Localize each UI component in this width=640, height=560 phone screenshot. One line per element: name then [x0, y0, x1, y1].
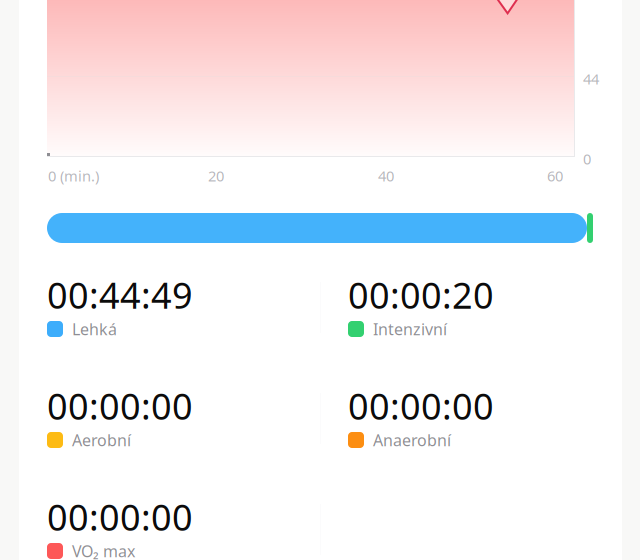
- staticText: 00:44:49: [47, 271, 193, 319]
- staticText: 00:00:00: [47, 382, 193, 430]
- staticText: 20: [208, 166, 224, 185]
- button[interactable]: 00:00:20: [348, 271, 640, 341]
- staticText: VO₂ max: [72, 540, 135, 560]
- button[interactable]: 00:00:00: [348, 382, 640, 452]
- button[interactable]: [47, 213, 593, 243]
- staticText: 60: [547, 166, 563, 185]
- staticText: 0 (min.): [48, 166, 99, 185]
- button[interactable]: 00:00:00: [47, 382, 348, 452]
- staticText: Aerobní: [72, 429, 131, 451]
- staticText: 40: [378, 166, 394, 185]
- staticText: Lehká: [72, 318, 117, 340]
- staticText: 0: [583, 149, 591, 168]
- staticText: Intenzivní: [373, 318, 447, 340]
- staticText: 00:00:20: [348, 271, 494, 319]
- staticText: Anaerobní: [373, 429, 451, 451]
- button[interactable]: 00:44:49: [47, 271, 348, 341]
- staticText: 00:00:00: [348, 382, 494, 430]
- staticText: 00:00:00: [47, 493, 193, 541]
- staticText: 44: [583, 69, 599, 88]
- button[interactable]: 00:00:00: [47, 493, 348, 560]
